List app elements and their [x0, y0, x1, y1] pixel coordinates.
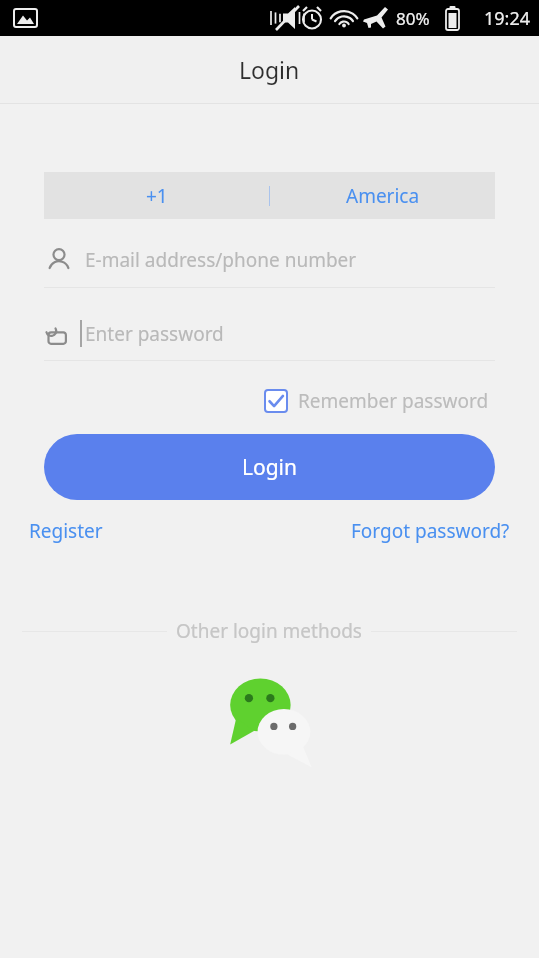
staticText: America	[346, 183, 420, 209]
button[interactable]: E-mail address/phone number	[44, 232, 495, 288]
staticText: Forgot password?	[351, 518, 510, 544]
staticText: Remember password	[298, 388, 489, 414]
button[interactable]: Login	[44, 434, 495, 500]
button[interactable]: Remember password	[258, 382, 495, 420]
staticText: Other login methods	[176, 618, 362, 644]
button[interactable]: Register	[23, 510, 109, 552]
staticText: E-mail address/phone number	[85, 247, 357, 273]
staticText: Login	[242, 453, 298, 482]
button[interactable]: Enter password	[44, 305, 495, 361]
staticText: Register	[29, 518, 103, 544]
staticText: Login	[239, 54, 300, 85]
staticText: +1	[146, 183, 168, 209]
button[interactable]: Forgot password?	[345, 510, 516, 552]
button[interactable]: +1	[44, 172, 495, 219]
staticText: Enter password	[85, 321, 224, 347]
button[interactable]: Sign in with WeChat	[222, 669, 318, 765]
staticText: 19:24	[484, 6, 531, 31]
staticText: 80%	[396, 7, 430, 30]
